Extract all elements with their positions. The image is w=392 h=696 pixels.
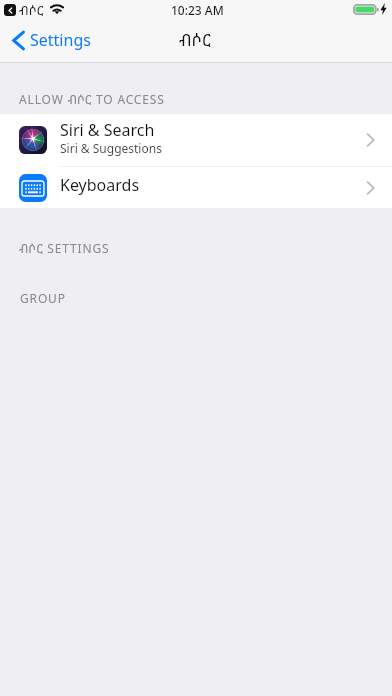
staticText: 10:23 AM <box>171 2 224 18</box>
button[interactable]: Siri & Search <box>0 114 392 166</box>
staticText: Siri & Suggestions <box>60 140 162 156</box>
staticText: ALLOW ብሶር TO ACCESS <box>19 91 165 108</box>
staticText: ብሶር <box>179 28 211 51</box>
staticText: ብሶር <box>19 1 44 19</box>
button[interactable]: Settings <box>0 24 103 60</box>
staticText: Siri & Search <box>60 119 155 141</box>
other: Back to previous app <box>4 4 16 16</box>
button[interactable]: Keyboards <box>0 167 392 208</box>
staticText: ብሶር SETTINGS <box>19 240 110 257</box>
staticText: Keyboards <box>60 174 140 196</box>
staticText: Settings <box>30 29 91 51</box>
staticText: GROUP <box>20 290 66 306</box>
